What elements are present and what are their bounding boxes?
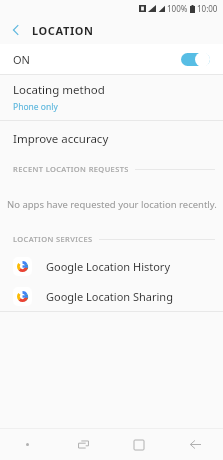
button[interactable]: Recent apps [55, 429, 111, 460]
button[interactable]: ON [0, 44, 223, 74]
button[interactable]: Home [111, 429, 167, 460]
staticText: 10:00 [197, 3, 218, 14]
staticText: LOCATION SERVICES [13, 234, 93, 244]
staticText: LOCATION [32, 23, 94, 38]
staticText: 100% [167, 3, 188, 14]
button[interactable]: Back [0, 16, 32, 44]
button[interactable]: Menu indicator [0, 429, 55, 460]
button[interactable]: Locating method [0, 75, 223, 120]
staticText: Google Location History [46, 259, 171, 274]
staticText: No apps have requested your location rec… [7, 198, 217, 211]
button[interactable]: Google Location History [0, 251, 223, 281]
staticText: ON [13, 52, 30, 67]
staticText: RECENT LOCATION REQUESTS [13, 164, 129, 174]
staticText: Google Location Sharing [46, 289, 173, 304]
button[interactable]: Back [167, 429, 223, 460]
button[interactable]: Improve accuracy [0, 121, 223, 157]
button[interactable]: Google Location Sharing [0, 281, 223, 311]
staticText: Improve accuracy [13, 131, 109, 147]
staticText: Phone only [13, 101, 58, 113]
staticText: Locating method [13, 82, 105, 98]
